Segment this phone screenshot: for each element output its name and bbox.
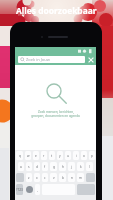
- staticText: v: [53, 176, 55, 180]
- staticText: Zoek mensen, berichten,: [38, 110, 74, 114]
- button[interactable]: d: [34, 162, 40, 171]
- staticText: z: [28, 176, 30, 180]
- button[interactable]: y: [57, 151, 63, 160]
- button[interactable]: p: [89, 151, 95, 160]
- button[interactable]: a: [18, 162, 24, 171]
- button[interactable]: Emoji: [25, 184, 33, 195]
- button[interactable]: z: [26, 173, 32, 182]
- button[interactable]: Zoek in Jouw: [18, 56, 85, 63]
- button[interactable]: o: [81, 151, 87, 160]
- staticText: Zoek in Jouw: [26, 57, 50, 62]
- staticText: a: [20, 165, 22, 169]
- staticText: ?123: [16, 188, 23, 192]
- button[interactable]: r: [41, 151, 47, 160]
- staticText: c: [44, 176, 46, 180]
- staticText: o: [83, 154, 85, 158]
- button[interactable]: s: [26, 162, 32, 171]
- button[interactable]: q: [16, 151, 23, 160]
- staticText: k: [80, 165, 82, 169]
- button[interactable]: Shift: [16, 173, 24, 182]
- staticText: y: [59, 154, 61, 158]
- button[interactable]: g: [50, 162, 57, 171]
- button[interactable]: e: [33, 151, 39, 160]
- staticText: r: [43, 154, 45, 158]
- button[interactable]: m: [77, 173, 84, 182]
- button[interactable]: h: [59, 162, 66, 171]
- staticText: e: [35, 154, 37, 158]
- button[interactable]: k: [77, 162, 84, 171]
- button[interactable]: t: [49, 151, 55, 160]
- button[interactable]: b: [59, 173, 66, 182]
- staticText: q: [19, 154, 21, 158]
- button[interactable]: Close search: [87, 55, 94, 64]
- button[interactable]: Comma: [35, 184, 40, 195]
- staticText: s: [28, 165, 30, 169]
- button[interactable]: n: [68, 173, 75, 182]
- staticText: n: [71, 176, 73, 180]
- staticText: ,: [37, 188, 38, 192]
- button[interactable]: Backspace: [86, 173, 95, 182]
- button[interactable]: i: [73, 151, 79, 160]
- staticText: p: [91, 154, 93, 158]
- staticText: groepen, documenten en agenda: [31, 114, 80, 118]
- staticText: f: [44, 165, 46, 169]
- staticText: g: [53, 165, 55, 169]
- staticText: h: [62, 165, 64, 169]
- button[interactable]: l: [86, 162, 93, 171]
- button[interactable]: f: [42, 162, 48, 171]
- button[interactable]: x: [34, 173, 40, 182]
- staticText: t: [51, 154, 53, 158]
- staticText: x: [36, 176, 38, 180]
- button[interactable]: u: [65, 151, 71, 160]
- staticText: u: [67, 154, 69, 158]
- staticText: Alles doorzoekbaar: [16, 5, 97, 16]
- button[interactable]: Symbols: [16, 184, 23, 195]
- staticText: i: [76, 154, 77, 158]
- button[interactable]: v: [50, 173, 57, 182]
- button[interactable]: w: [25, 151, 31, 160]
- staticText: b: [62, 176, 64, 180]
- button[interactable]: c: [42, 173, 48, 182]
- staticText: d: [36, 165, 38, 169]
- staticText: l: [89, 165, 90, 169]
- staticText: w: [27, 154, 30, 158]
- button[interactable]: j: [68, 162, 75, 171]
- staticText: m: [79, 176, 82, 180]
- staticText: j: [71, 165, 72, 169]
